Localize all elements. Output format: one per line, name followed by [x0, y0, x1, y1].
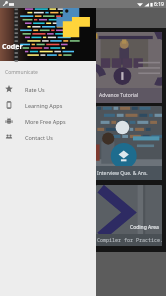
- button[interactable]: Advance Tutorial: [96, 32, 162, 103]
- other: Rate Us: [5, 85, 13, 93]
- staticText: Interview Que. & Ans.: [97, 170, 148, 177]
- staticText: Rate Us: [25, 86, 45, 93]
- staticText: Coder: [2, 42, 23, 52]
- button[interactable]: Learning Apps: [0, 97, 96, 113]
- other: Contact Us: [5, 133, 13, 141]
- other: More Free Apps: [5, 117, 13, 125]
- button[interactable]: More Free Apps: [0, 113, 96, 129]
- button[interactable]: Contact Us: [0, 129, 96, 145]
- button[interactable]: Rate Us: [0, 81, 96, 97]
- button[interactable]: Coding Area: [96, 185, 162, 246]
- staticText: 6:19: [154, 1, 164, 8]
- staticText: More Free Apps: [25, 118, 66, 125]
- staticText: Advance Tutorial: [99, 92, 139, 99]
- staticText: Learning Apps: [25, 102, 63, 109]
- staticText: Contact Us: [25, 134, 53, 141]
- other: Learning Apps: [5, 101, 13, 109]
- other: Developer options: [2, 1, 8, 7]
- button[interactable]: Interview Que. & Ans.: [96, 106, 162, 180]
- staticText: Communicate: [5, 69, 38, 76]
- staticText: Coding Area: [130, 224, 159, 231]
- staticText: Compiler for Practice.: [97, 237, 162, 244]
